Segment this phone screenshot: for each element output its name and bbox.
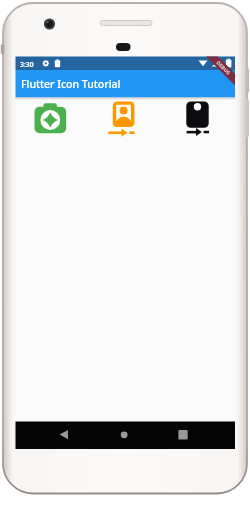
button[interactable] (30, 100, 70, 140)
staticText: DEBUG (215, 59, 232, 76)
button[interactable] (52, 424, 76, 447)
button[interactable] (104, 98, 144, 138)
button[interactable] (171, 424, 195, 447)
button[interactable] (112, 424, 136, 447)
staticText: Flutter Icon Tutorial (21, 77, 121, 91)
button[interactable] (178, 98, 218, 138)
staticText: 3:30 (20, 60, 34, 69)
